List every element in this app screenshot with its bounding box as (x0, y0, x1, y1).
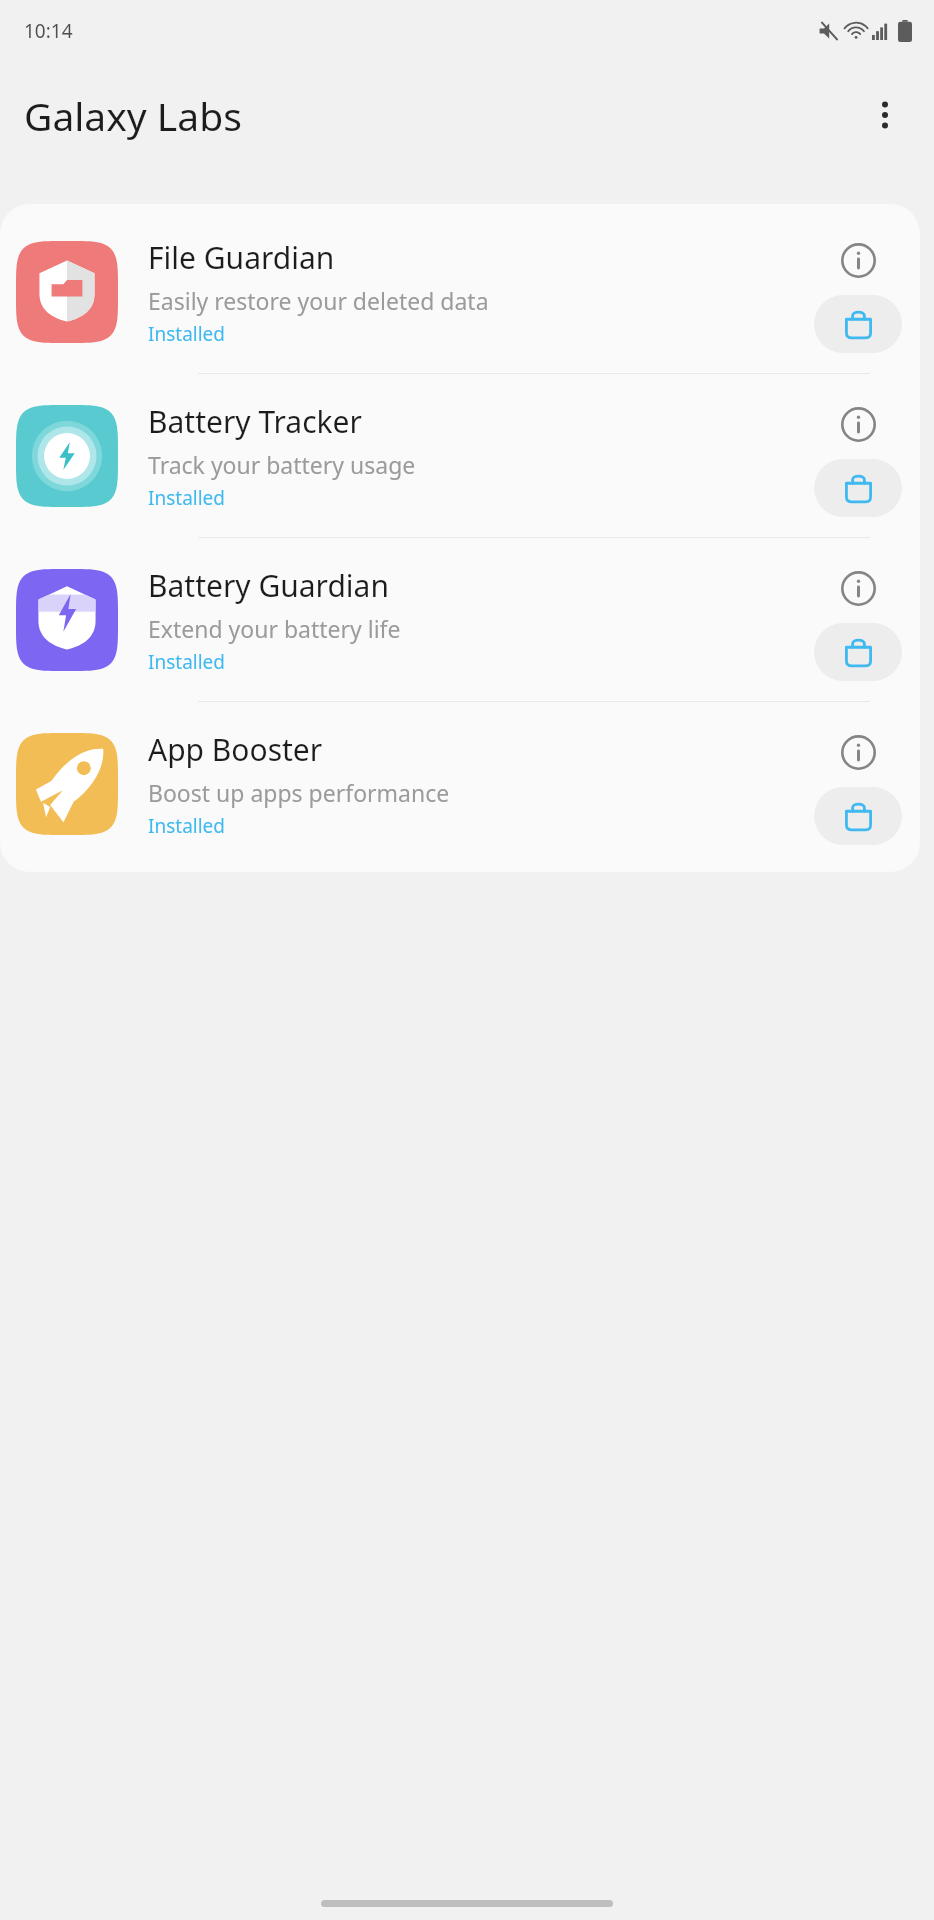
staticText: Installed (148, 649, 226, 675)
button[interactable]: Information about File Guardian (829, 231, 887, 289)
staticText: Installed (148, 321, 226, 347)
button[interactable]: Open File Guardian in store (814, 295, 902, 353)
button[interactable]: Battery Tracker (0, 374, 920, 538)
button[interactable]: More options (852, 82, 918, 148)
button[interactable]: File Guardian (0, 210, 920, 374)
staticText: Boost up apps performance (148, 777, 450, 808)
button[interactable]: Information about Battery Tracker (829, 395, 887, 453)
staticText: Extend your battery life (148, 613, 401, 644)
button[interactable]: Information about Battery Guardian (829, 559, 887, 617)
staticText: Easily restore your deleted data (148, 285, 489, 316)
staticText: Track your battery usage (148, 449, 416, 480)
staticText: Galaxy Labs (24, 89, 242, 142)
button[interactable]: Open Battery Tracker in store (814, 459, 902, 517)
staticText: 10:14 (24, 18, 73, 44)
button[interactable]: Battery Guardian (0, 538, 920, 702)
button[interactable]: Open App Booster in store (814, 787, 902, 845)
staticText: Installed (148, 813, 226, 839)
staticText: Battery Tracker (148, 401, 362, 442)
staticText: File Guardian (148, 237, 335, 278)
staticText: Battery Guardian (148, 565, 389, 606)
button[interactable]: Information about App Booster (829, 723, 887, 781)
button[interactable]: Open Battery Guardian in store (814, 623, 902, 681)
button[interactable]: App Booster (0, 702, 920, 866)
staticText: App Booster (148, 729, 323, 770)
staticText: Installed (148, 485, 226, 511)
